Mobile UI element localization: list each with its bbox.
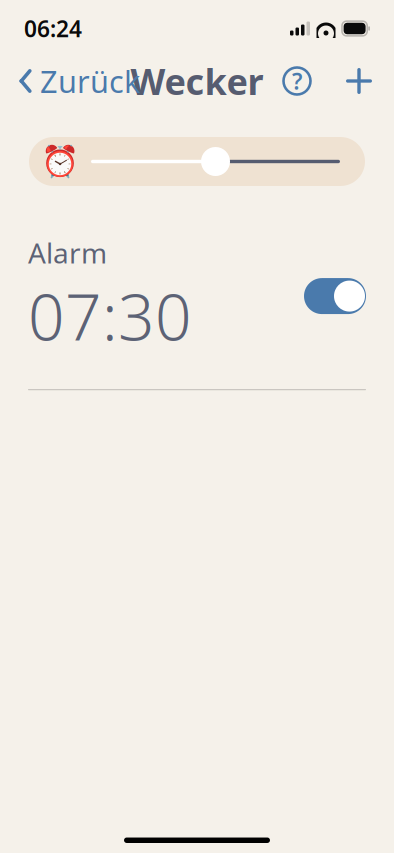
staticText: Alarm: [28, 234, 107, 271]
staticText: Zurück: [40, 61, 140, 101]
staticText: 06:24: [24, 13, 82, 43]
button[interactable]: Hilfe: [274, 58, 320, 104]
staticText: Wecker: [130, 57, 263, 105]
button[interactable]: Zurück: [12, 53, 146, 109]
staticText: ?: [292, 66, 302, 96]
staticText: 07:30: [28, 273, 192, 358]
button[interactable]: Alarm: [0, 230, 394, 362]
staticText: ⏰: [41, 144, 79, 179]
button[interactable]: Wecker hinzufügen: [336, 58, 382, 104]
